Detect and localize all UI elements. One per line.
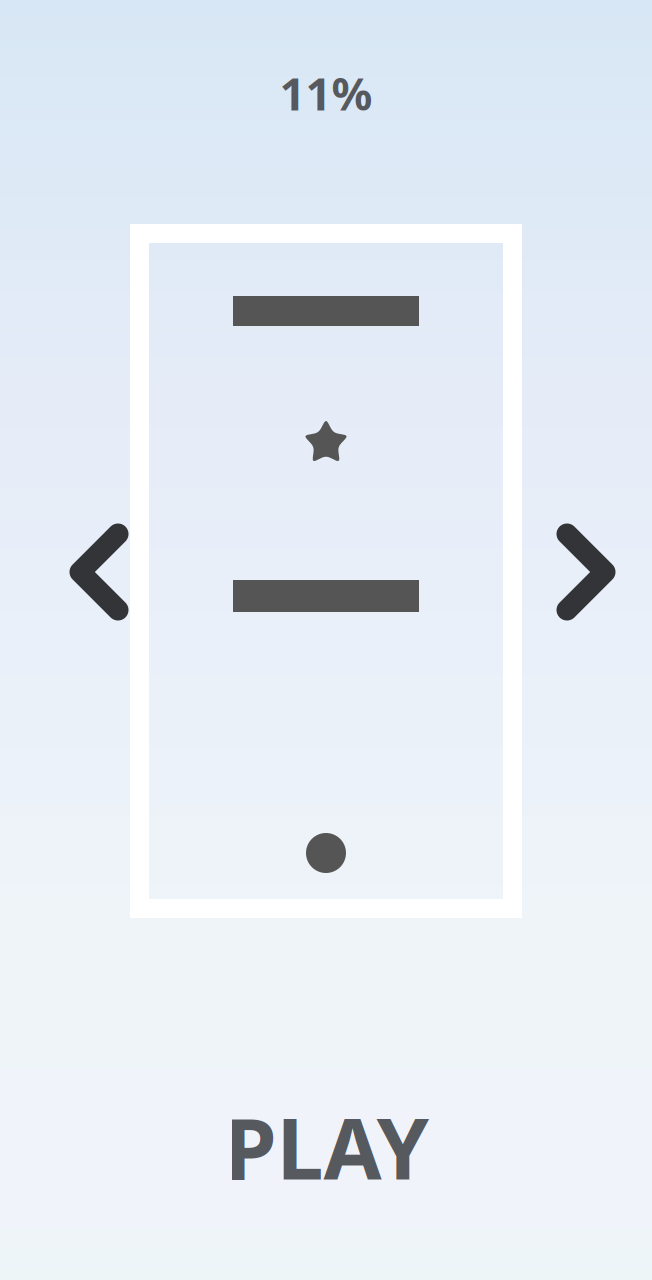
button[interactable]: Next level <box>541 508 631 636</box>
staticText: 11% <box>279 63 372 123</box>
button[interactable]: PLAY <box>200 1077 453 1217</box>
button[interactable]: Level preview <box>130 224 522 918</box>
staticText: PLAY <box>224 1091 429 1203</box>
button[interactable]: Previous level <box>54 508 144 636</box>
